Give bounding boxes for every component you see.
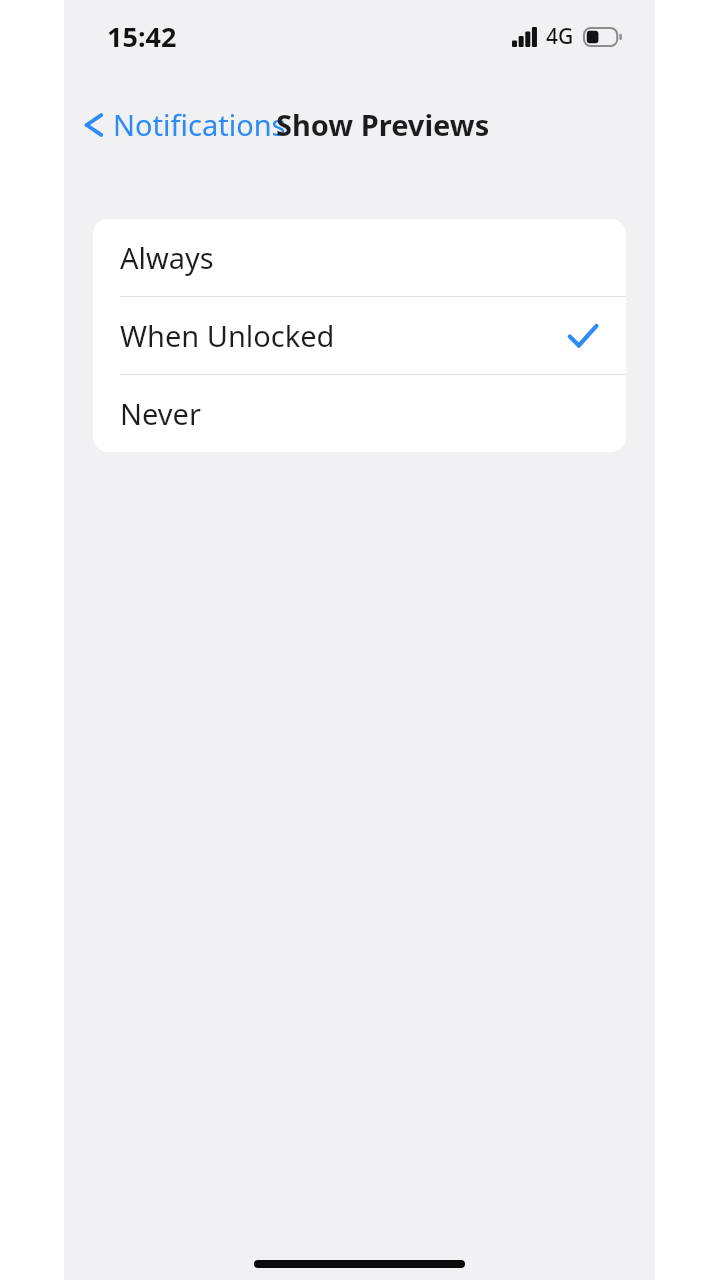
staticText: 15:42	[107, 18, 177, 55]
staticText: When Unlocked	[120, 316, 335, 355]
staticText: Show Previews	[276, 105, 490, 144]
staticText: Notifications	[113, 105, 286, 144]
staticText: Never	[120, 394, 201, 433]
staticText: 4G	[546, 22, 574, 51]
button[interactable]: Back	[78, 101, 294, 148]
button[interactable]: When Unlocked	[93, 297, 626, 374]
staticText: Always	[120, 238, 214, 277]
other: Back	[84, 110, 104, 140]
button[interactable]: Never	[93, 375, 626, 452]
button[interactable]: Always	[93, 219, 626, 296]
